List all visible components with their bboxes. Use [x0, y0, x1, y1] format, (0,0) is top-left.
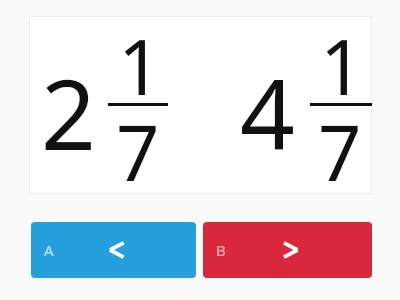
- button[interactable]: Answer A, less than: [31, 222, 196, 278]
- staticText: A: [44, 240, 54, 260]
- staticText: 2: [41, 47, 96, 178]
- staticText: 7: [116, 100, 160, 204]
- button[interactable]: Answer B, greater than: [203, 222, 372, 278]
- staticText: 4: [240, 47, 295, 178]
- staticText: 7: [318, 100, 362, 204]
- staticText: B: [216, 240, 226, 260]
- staticText: 1: [320, 14, 364, 118]
- staticText: 1: [118, 14, 162, 118]
